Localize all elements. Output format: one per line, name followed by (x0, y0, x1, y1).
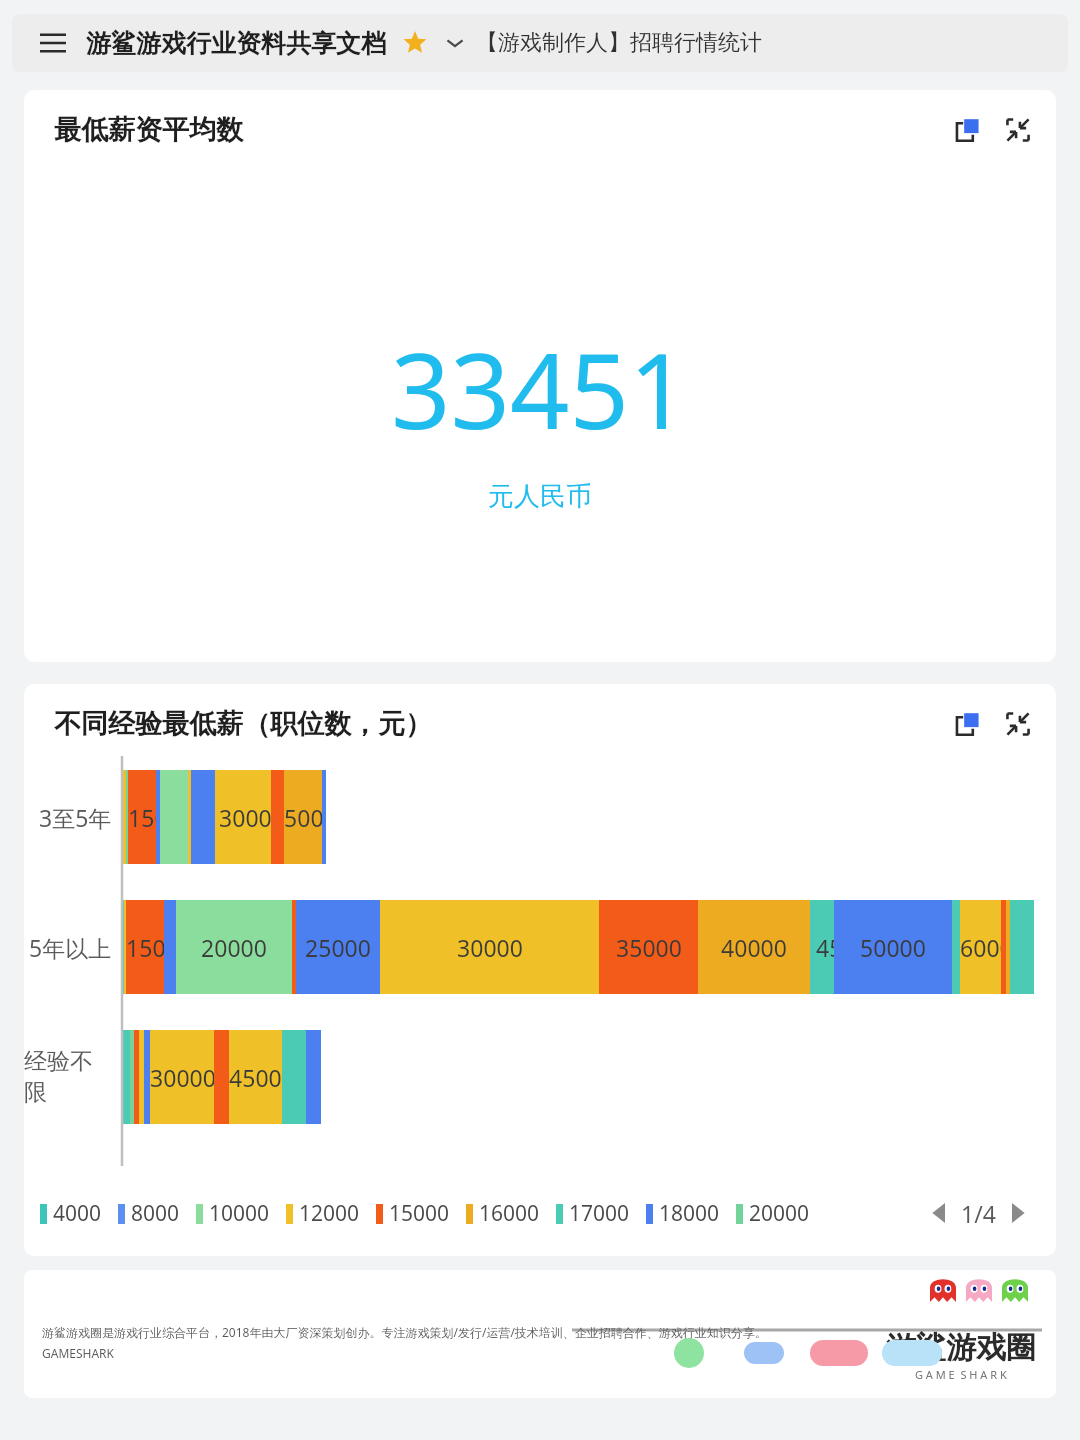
button[interactable]: 16000 (466, 1199, 540, 1228)
button[interactable]: Fullscreen (998, 110, 1038, 150)
staticText: 1/4 (961, 1198, 996, 1229)
button[interactable]: Previous page (919, 1192, 961, 1234)
staticText: G A M E S H A R K (915, 1367, 1007, 1382)
staticText: 17000 (569, 1199, 630, 1228)
staticText: 60000 (960, 932, 1001, 963)
staticText: GAMESHARK (42, 1345, 115, 1361)
staticText: 30000 (150, 1062, 214, 1093)
staticText: 50000 (284, 802, 322, 833)
button[interactable]: 10000 (196, 1199, 270, 1228)
button[interactable]: Menu (34, 24, 72, 62)
button[interactable]: Favorite (400, 28, 430, 58)
staticText: 45000 (229, 1062, 282, 1093)
button[interactable]: 12000 (286, 1199, 360, 1228)
button[interactable]: 18000 (646, 1199, 720, 1228)
button[interactable]: Next page (996, 1192, 1038, 1234)
staticText: 15000 (128, 802, 156, 833)
staticText: 35000 (616, 932, 682, 963)
staticText: 不同经验最低薪（职位数，元） (54, 707, 432, 741)
button[interactable]: 17000 (556, 1199, 630, 1228)
staticText: 16000 (479, 1199, 540, 1228)
button[interactable]: 15000 (376, 1199, 450, 1228)
staticText: 45000 (816, 932, 834, 963)
button[interactable]: 20000 (736, 1199, 810, 1228)
staticText: 30000 (219, 802, 271, 833)
button[interactable]: Copy (948, 110, 988, 150)
staticText: 最低薪资平均数 (54, 113, 243, 147)
staticText: 20000 (201, 932, 267, 963)
staticText: 25000 (305, 932, 371, 963)
button[interactable]: 游鲨游戏行业资料共享文档 (86, 28, 386, 59)
staticText: 4000 (53, 1199, 102, 1228)
staticText: 游鲨游戏圈是游戏行业综合平台，2018年由大厂资深策划创办。专注游戏策划/发行/… (42, 1324, 767, 1340)
staticText: 游鲨游戏圈 (886, 1329, 1036, 1367)
staticText: 30000 (457, 932, 523, 963)
staticText: 12000 (299, 1199, 360, 1228)
button[interactable]: Expand (440, 28, 470, 58)
staticText: 经验不限 (24, 1047, 112, 1107)
staticText: 15000 (389, 1199, 450, 1228)
staticText: 15000 (126, 932, 164, 963)
staticText: 5年以上 (29, 932, 112, 963)
button[interactable]: 【游戏制作人】招聘行情统计 (476, 29, 762, 57)
staticText: 10000 (209, 1199, 270, 1228)
staticText: 8000 (131, 1199, 180, 1228)
staticText: 3至5年 (39, 802, 112, 833)
button[interactable]: Copy (948, 704, 988, 744)
staticText: 50000 (860, 932, 926, 963)
staticText: 33451 (391, 318, 689, 460)
button[interactable]: Fullscreen (998, 704, 1038, 744)
staticText: 18000 (659, 1199, 720, 1228)
staticText: 40000 (721, 932, 787, 963)
button[interactable]: 4000 (40, 1199, 102, 1228)
staticText: 20000 (749, 1199, 810, 1228)
button[interactable]: 8000 (118, 1199, 180, 1228)
staticText: 元人民币 (488, 480, 592, 513)
